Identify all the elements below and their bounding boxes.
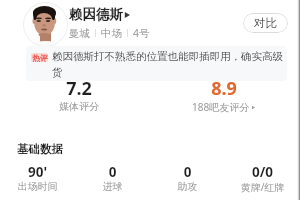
staticText: 对比	[254, 16, 277, 30]
staticText: 8.9	[145, 76, 300, 101]
staticText: 媒体评分	[0, 100, 158, 113]
staticText: 出场时间	[0, 180, 75, 193]
staticText: 中场	[101, 27, 122, 40]
staticText: 90'	[0, 163, 75, 181]
staticText: 7.2	[0, 76, 158, 101]
button[interactable]: 对比	[243, 13, 288, 33]
button[interactable]: 0/0	[225, 163, 300, 198]
button[interactable]: 8.9	[145, 76, 300, 119]
staticText: 助攻	[150, 180, 225, 193]
staticText: 黄牌/红牌	[225, 180, 300, 194]
staticText: 0/0	[225, 163, 300, 181]
staticText: 0	[75, 163, 150, 181]
button[interactable]: 热评	[26, 46, 287, 81]
button[interactable]: 0	[150, 163, 225, 198]
button[interactable]: 赖因德斯	[69, 6, 131, 23]
button[interactable]: 90'	[0, 163, 75, 198]
staticText: 赖因德斯	[69, 6, 123, 23]
staticText: 曼城	[69, 27, 90, 40]
button[interactable]: Player avatar	[23, 2, 68, 47]
staticText: 进球	[75, 180, 150, 193]
staticText: 0	[150, 163, 225, 181]
staticText: 基础数据	[17, 142, 63, 156]
button[interactable]: 0	[75, 163, 150, 198]
staticText: 4号	[133, 26, 150, 40]
button[interactable]: 7.2	[0, 76, 158, 119]
staticText: 赖因德斯打不熟悉的位置也能即插即用，确实高级货	[52, 50, 284, 79]
staticText: 188吧友评分	[192, 100, 250, 114]
staticText: 热评	[32, 53, 48, 62]
